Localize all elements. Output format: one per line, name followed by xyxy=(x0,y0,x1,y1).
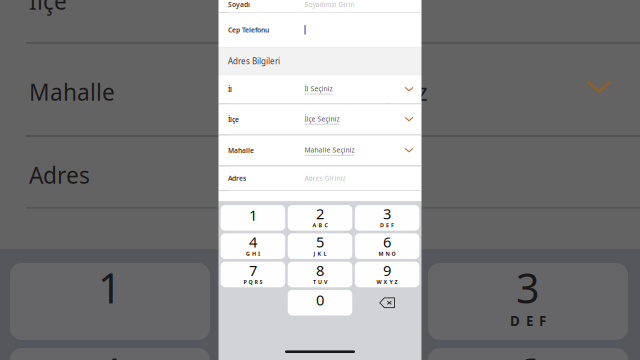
staticText: İl Seçiniz xyxy=(304,84,332,93)
staticText: 6 xyxy=(383,232,391,252)
button[interactable]: 4 xyxy=(221,233,285,259)
staticText: M N O xyxy=(379,250,396,257)
staticText: İlçe xyxy=(228,115,239,124)
staticText: 6 xyxy=(516,345,540,360)
staticText: 1 xyxy=(249,205,257,225)
staticText: W X Y Z xyxy=(377,278,398,285)
staticText: 9 xyxy=(383,260,391,280)
staticText: 3 xyxy=(383,204,391,223)
button[interactable]: Delete xyxy=(355,290,419,316)
staticText: Soyadı xyxy=(228,0,250,9)
staticText: J K L xyxy=(313,250,326,257)
staticText: G H I xyxy=(246,250,260,257)
button[interactable]: İl xyxy=(218,75,421,103)
staticText: 4 xyxy=(98,345,122,360)
staticText: İlçe xyxy=(29,0,67,16)
staticText: 0 xyxy=(316,290,324,310)
button[interactable]: 6 xyxy=(355,233,419,259)
button[interactable]: İlçe xyxy=(218,104,421,135)
staticText: Adres Bilgileri xyxy=(228,56,280,66)
staticText: T U V xyxy=(313,278,327,285)
staticText: İlçe Seçiniz xyxy=(263,0,380,16)
button[interactable]: 2 xyxy=(288,205,352,231)
staticText: 2 xyxy=(307,260,331,315)
staticText: Adres xyxy=(228,174,246,183)
staticText: İl xyxy=(228,85,232,94)
staticText: A B C xyxy=(299,312,338,330)
button[interactable]: 0 xyxy=(288,290,352,316)
staticText: 8 xyxy=(316,260,324,280)
staticText: 1 xyxy=(98,260,122,315)
staticText: Mahalle xyxy=(228,146,254,155)
button[interactable]: Cep Telefonu xyxy=(218,13,421,47)
button[interactable]: 5 xyxy=(288,233,352,259)
staticText: Adres Giriniz xyxy=(304,174,345,183)
staticText: Adres xyxy=(29,160,90,190)
staticText: Mahalle Seçiniz xyxy=(263,77,428,107)
staticText: 3 xyxy=(516,260,540,315)
button[interactable]: 7 xyxy=(221,262,285,287)
staticText: 5 xyxy=(307,345,331,360)
staticText: D E F xyxy=(380,222,394,229)
button[interactable]: 1 xyxy=(221,205,285,231)
staticText: 4 xyxy=(249,232,257,252)
staticText: 5 xyxy=(316,232,324,252)
staticText: 2 xyxy=(316,204,324,223)
staticText: İlçe Seçiniz xyxy=(304,114,339,123)
button[interactable]: 8 xyxy=(288,262,352,287)
staticText: P Q R S xyxy=(243,278,262,285)
staticText: D E F xyxy=(510,312,546,330)
staticText: Mahalle Seçiniz xyxy=(304,145,354,154)
staticText: Mahalle xyxy=(29,77,115,107)
staticText: Cep Telefonu xyxy=(228,25,269,34)
staticText: Soyadınızı Girin xyxy=(304,0,354,9)
button[interactable]: Mahalle xyxy=(218,135,421,166)
staticText: A B C xyxy=(312,222,327,229)
staticText: Adres Giriniz xyxy=(263,160,399,190)
button[interactable]: Adres xyxy=(218,166,421,190)
button[interactable]: 3 xyxy=(355,205,419,231)
button[interactable]: 9 xyxy=(355,262,419,287)
staticText: 7 xyxy=(249,260,257,280)
